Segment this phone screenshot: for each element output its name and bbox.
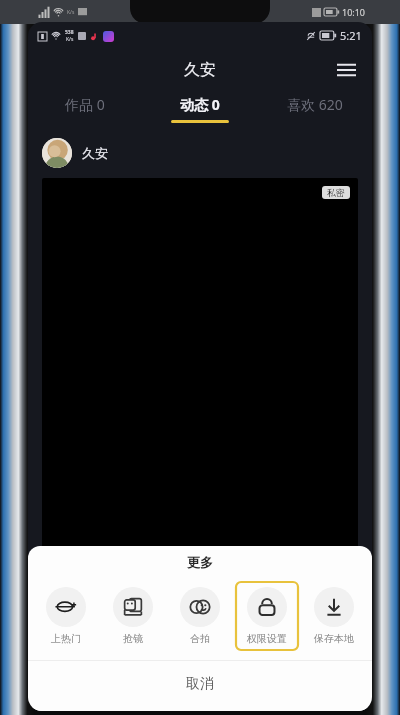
- staticText: 久安: [82, 145, 108, 161]
- staticText: 抢镜: [123, 632, 143, 645]
- button[interactable]: 久安: [42, 135, 372, 171]
- staticText: 取消: [186, 675, 214, 693]
- button[interactable]: 合拍: [167, 580, 233, 652]
- staticText: 更多: [187, 554, 213, 570]
- button[interactable]: 上热门: [33, 580, 99, 652]
- staticText: 保存本地: [314, 632, 354, 645]
- button[interactable]: 动态 0: [142, 91, 257, 127]
- staticText: K/s: [67, 9, 75, 16]
- button[interactable]: 抢镜: [100, 580, 166, 652]
- button[interactable]: 作品 0: [28, 91, 142, 127]
- button[interactable]: 喜欢 620: [257, 91, 372, 127]
- staticText: 上热门: [51, 632, 81, 645]
- staticText: 10:10: [342, 6, 366, 18]
- button[interactable]: 取消: [28, 661, 372, 707]
- button[interactable]: Menu: [328, 52, 364, 88]
- staticText: 权限设置: [247, 632, 287, 645]
- staticText: 喜欢 620: [287, 95, 343, 114]
- staticText: 5:21: [340, 28, 362, 43]
- staticText: 作品 0: [65, 95, 105, 114]
- button[interactable]: 保存本地: [301, 580, 367, 652]
- staticText: K/s: [66, 36, 74, 43]
- staticText: 久安: [184, 60, 216, 80]
- staticText: 私密: [327, 187, 345, 198]
- staticText: 动态 0: [180, 95, 220, 114]
- button[interactable]: 私密: [42, 178, 358, 711]
- staticText: 538: [65, 29, 74, 36]
- staticText: 合拍: [190, 632, 210, 645]
- button[interactable]: 权限设置: [234, 580, 300, 652]
